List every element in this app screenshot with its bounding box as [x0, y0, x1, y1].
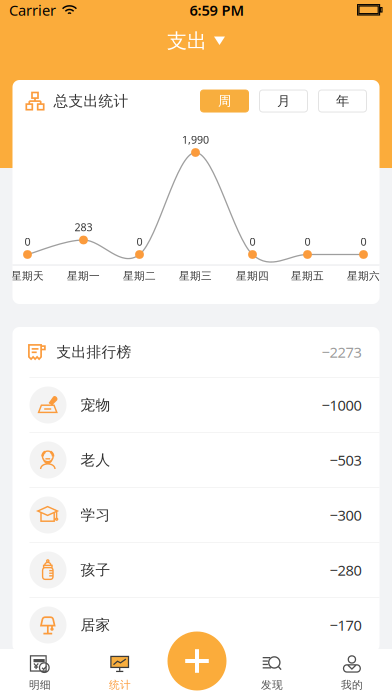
- button[interactable]: 统计: [80, 649, 160, 696]
- staticText: 居家: [80, 616, 110, 634]
- staticText: 星期四: [236, 269, 269, 282]
- staticText: −1000: [321, 395, 361, 415]
- button[interactable]: 支出: [167, 20, 225, 62]
- staticText: 0: [136, 234, 142, 249]
- staticText: 星期一: [67, 269, 100, 282]
- staticText: 0: [24, 234, 30, 249]
- staticText: 宠物: [80, 396, 110, 414]
- button[interactable]: 我的: [312, 649, 392, 696]
- button[interactable]: 年: [318, 90, 366, 112]
- staticText: 老人: [80, 451, 110, 469]
- staticText: 孩子: [80, 561, 110, 579]
- staticText: 283: [74, 220, 92, 234]
- staticText: 学习: [80, 506, 110, 524]
- staticText: 0: [304, 234, 310, 249]
- staticText: 星期五: [291, 269, 324, 282]
- staticText: 周: [218, 93, 231, 109]
- staticText: 年: [336, 93, 349, 109]
- staticText: 6:59 PM: [189, 0, 244, 20]
- button[interactable]: 明细: [0, 649, 80, 696]
- button[interactable]: 周: [200, 90, 248, 112]
- button[interactable]: 宠物: [12, 377, 379, 432]
- staticText: −300: [329, 505, 361, 525]
- staticText: −170: [329, 615, 361, 635]
- button[interactable]: Add record: [167, 631, 226, 690]
- button[interactable]: 居家: [12, 597, 379, 652]
- staticText: 1,990: [182, 132, 209, 147]
- staticText: 0: [360, 234, 366, 249]
- button[interactable]: 孩子: [12, 542, 379, 597]
- staticText: 支出排行榜: [56, 343, 131, 361]
- button[interactable]: 月: [259, 90, 307, 112]
- staticText: 统计: [109, 678, 131, 691]
- staticText: 总支出统计: [53, 92, 128, 110]
- staticText: Carrier: [9, 0, 56, 20]
- staticText: 星期六: [347, 269, 380, 282]
- button[interactable]: 老人: [12, 432, 379, 487]
- staticText: 月: [277, 93, 290, 109]
- staticText: 0: [249, 234, 255, 249]
- staticText: 星期三: [179, 269, 212, 282]
- staticText: 发现: [261, 678, 283, 691]
- button[interactable]: 发现: [232, 649, 312, 696]
- staticText: 我的: [341, 678, 363, 691]
- staticText: −280: [329, 560, 361, 580]
- staticText: 星期二: [123, 269, 156, 282]
- staticText: 星期天: [11, 269, 44, 282]
- staticText: 明细: [29, 678, 51, 691]
- staticText: −503: [329, 450, 361, 470]
- staticText: −2273: [321, 342, 361, 362]
- button[interactable]: 学习: [12, 487, 379, 542]
- staticText: 支出: [167, 29, 207, 53]
